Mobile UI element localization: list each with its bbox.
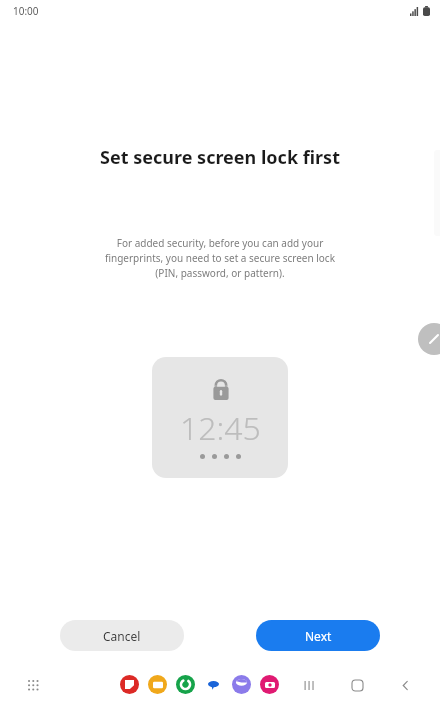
- button[interactable]: Home: [344, 672, 370, 698]
- staticText: Cancel: [103, 628, 141, 644]
- button[interactable]: Edit: [418, 323, 440, 355]
- staticText: For added security, before you can add y…: [96, 236, 344, 280]
- staticText: Next: [305, 628, 332, 644]
- button[interactable]: Notes: [120, 675, 139, 694]
- button[interactable]: Internet: [232, 675, 251, 694]
- button[interactable]: Phone: [176, 675, 195, 694]
- button[interactable]: Messages: [204, 675, 223, 694]
- button[interactable]: Files: [148, 675, 167, 694]
- staticText: Set secure screen lock first: [0, 145, 440, 170]
- button[interactable]: Cancel: [60, 620, 184, 651]
- button[interactable]: Recents: [296, 672, 322, 698]
- button[interactable]: Apps: [22, 674, 44, 696]
- button[interactable]: Next: [256, 620, 380, 651]
- button[interactable]: Camera: [260, 675, 279, 694]
- button[interactable]: Back: [392, 672, 418, 698]
- staticText: 12:45: [180, 406, 261, 450]
- staticText: 10:00: [13, 4, 39, 18]
